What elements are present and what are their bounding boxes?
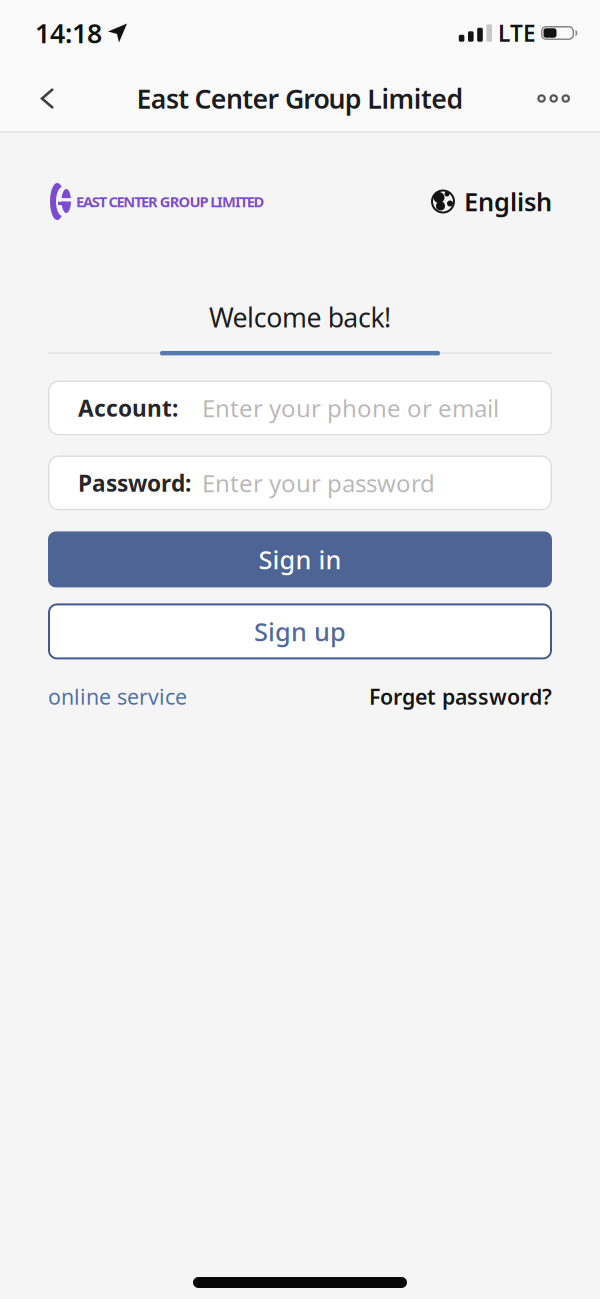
button[interactable]: Sign in	[48, 531, 552, 587]
staticText: LTE	[498, 18, 536, 48]
button[interactable]: Back	[0, 67, 55, 129]
staticText: Welcome back!	[209, 299, 391, 335]
staticText: East Center Group Limited	[137, 81, 463, 116]
staticText: Enter your phone or email	[202, 392, 499, 424]
staticText: EAST CENTER GROUP LIMITED	[76, 192, 265, 211]
staticText: Enter your password	[202, 467, 435, 499]
staticText: Sign in	[258, 543, 341, 576]
staticText: online service	[48, 682, 187, 711]
button[interactable]: Forget password?	[369, 682, 552, 711]
staticText: Forget password?	[369, 682, 552, 711]
staticText: 14:18	[35, 15, 102, 51]
button[interactable]: Sign up	[48, 603, 552, 659]
staticText: Account:	[78, 393, 178, 423]
button[interactable]: More	[537, 68, 600, 129]
button[interactable]: online service	[48, 682, 187, 711]
staticText: English	[464, 185, 552, 218]
button[interactable]: Language: English	[431, 185, 552, 218]
staticText: Password:	[78, 468, 191, 498]
staticText: Sign up	[254, 615, 346, 648]
